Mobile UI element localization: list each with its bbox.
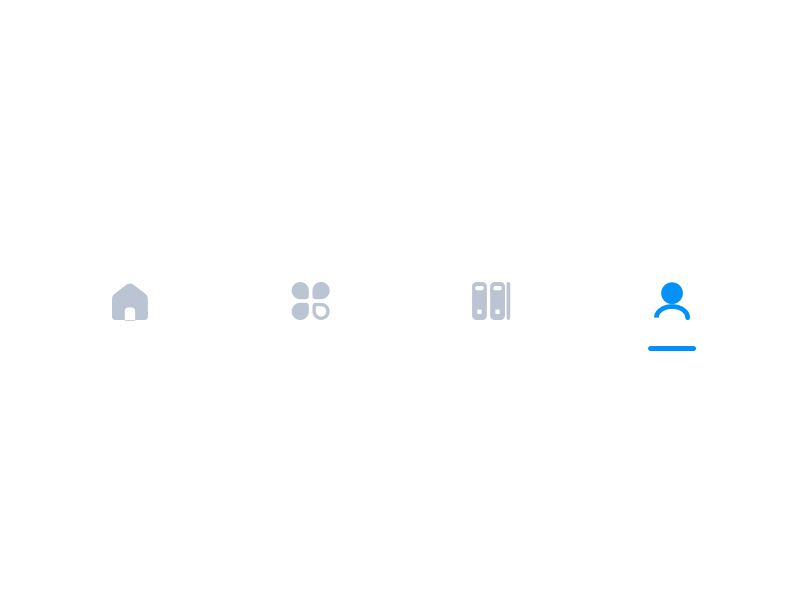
button[interactable]: Home [60,282,200,351]
button[interactable]: Library [421,282,561,351]
button[interactable]: Apps [241,282,381,351]
button[interactable]: Profile [602,282,742,351]
